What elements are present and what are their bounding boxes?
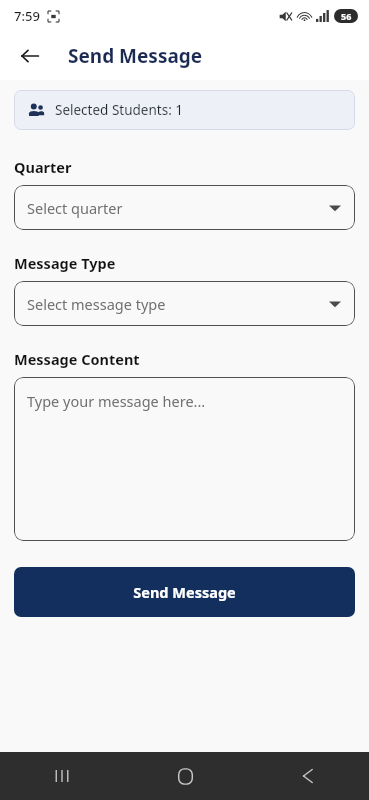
staticText: Select message type — [27, 294, 166, 314]
staticText: 7:59 — [14, 7, 40, 25]
button[interactable]: Select message type — [14, 281, 355, 326]
staticText: 56 — [341, 10, 352, 22]
button[interactable]: Send Message — [14, 567, 355, 617]
button[interactable]: Select quarter — [14, 185, 355, 230]
staticText: Quarter — [14, 157, 72, 177]
button[interactable]: Back — [10, 36, 50, 76]
staticText: Message Type — [14, 253, 116, 273]
button[interactable]: Selected Students: 1 — [14, 90, 355, 130]
staticText: Send Message — [133, 582, 236, 602]
staticText: Message Content — [14, 349, 140, 369]
button[interactable]: Home — [135, 752, 235, 800]
staticText: Selected Students: 1 — [55, 101, 183, 119]
button[interactable]: Recent apps — [12, 752, 112, 800]
staticText: Send Message — [68, 43, 203, 69]
button[interactable]: Back — [258, 752, 358, 800]
staticText: Type your message here... — [27, 391, 206, 411]
staticText: Select quarter — [27, 198, 123, 218]
button[interactable]: Type your message here... — [14, 377, 355, 541]
